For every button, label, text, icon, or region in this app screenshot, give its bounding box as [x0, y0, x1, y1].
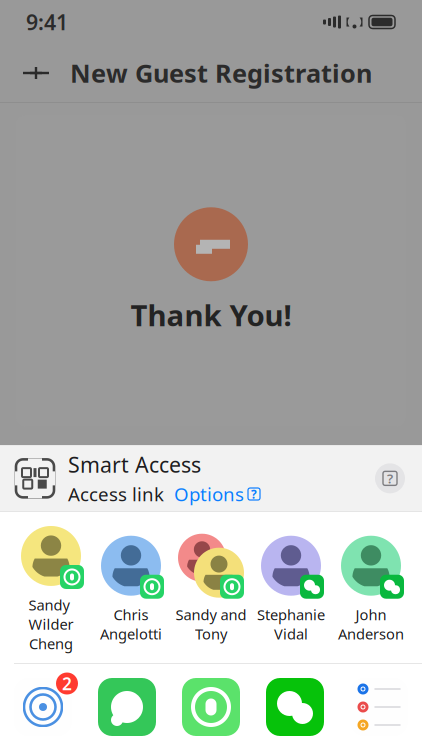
button[interactable]: Help [372, 460, 408, 496]
staticText: Cheng [29, 634, 73, 653]
staticText: 9:41 [26, 8, 68, 36]
staticText: Thank You! [130, 295, 291, 334]
staticText: ? [387, 469, 393, 487]
button[interactable]: Messages [85, 678, 169, 736]
button[interactable]: Options [174, 482, 260, 506]
staticText: Stephanie [257, 605, 325, 624]
staticText: John [355, 605, 386, 624]
button[interactable]: John [331, 532, 411, 644]
staticText: Options [174, 482, 244, 506]
staticText: Smart Access [68, 450, 201, 479]
staticText: 2 [62, 672, 72, 695]
button[interactable]: Reminders [337, 678, 421, 736]
button[interactable]: Sandy Wilder [11, 522, 91, 653]
button[interactable]: Sandy and [171, 532, 251, 644]
staticText: ? [251, 486, 257, 502]
staticText: Chris [113, 605, 148, 624]
staticText: Access link [68, 482, 164, 506]
button[interactable]: Back [14, 51, 58, 95]
staticText: Angelotti [100, 624, 162, 644]
staticText: New Guest Registration [70, 56, 372, 90]
button[interactable]: WhatsApp [169, 678, 253, 736]
staticText: Sandy Wilder [28, 595, 73, 634]
staticText: Anderson [338, 624, 404, 644]
staticText: Sandy and [175, 605, 246, 624]
button[interactable]: Stephanie [251, 532, 331, 644]
button[interactable]: Chris [91, 532, 171, 644]
staticText: Vidal [274, 624, 308, 644]
button[interactable]: WeChat [253, 678, 337, 736]
button[interactable]: AirDrop [1, 678, 85, 736]
staticText: Tony [195, 624, 227, 644]
